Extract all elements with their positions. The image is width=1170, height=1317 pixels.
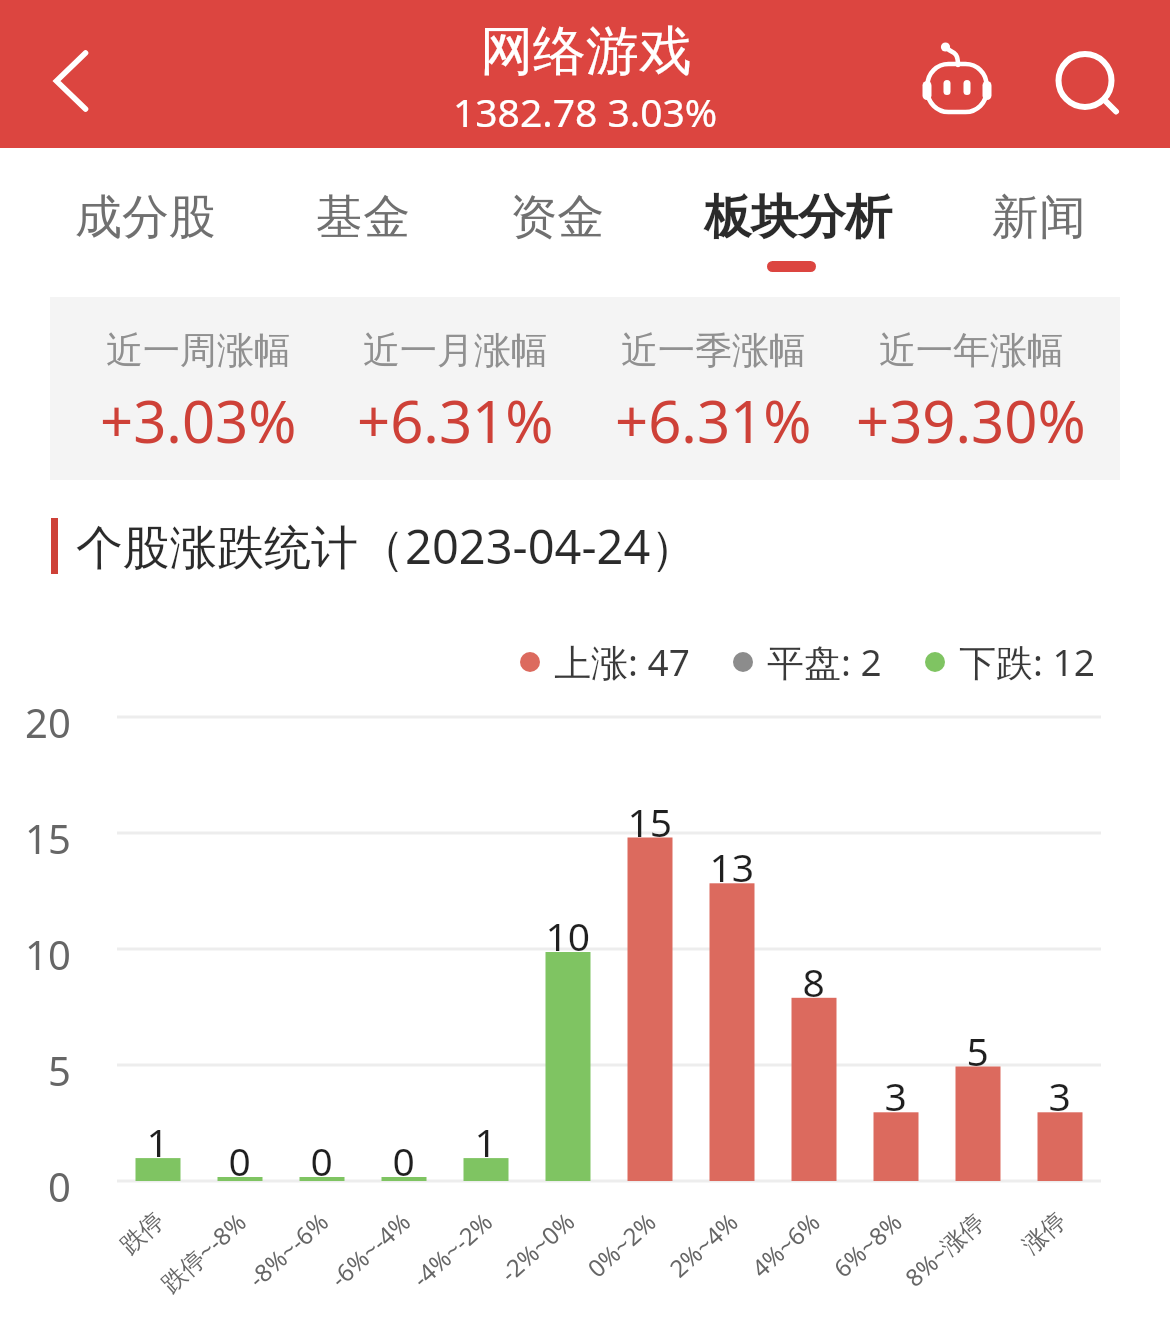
staticText: 上涨: 47 xyxy=(554,636,690,687)
staticText: 个股涨跌统计（2023-04-24） xyxy=(76,514,698,578)
button[interactable]: Back xyxy=(0,0,130,148)
staticText: 资金 xyxy=(510,188,604,247)
button[interactable]: 基金 xyxy=(316,148,410,272)
staticText: +6.31% xyxy=(615,381,812,460)
staticText: 近一周涨幅 xyxy=(106,327,291,374)
staticText: 板块分析 xyxy=(704,188,892,247)
button[interactable]: 成分股 xyxy=(75,148,216,272)
staticText: 1382.78 3.03% xyxy=(453,85,718,138)
staticText: 近一年涨幅 xyxy=(879,327,1064,374)
button[interactable]: 新闻 xyxy=(992,148,1086,272)
staticText: 近一季涨幅 xyxy=(621,327,806,374)
staticText: 下跌: 12 xyxy=(959,636,1095,687)
staticText: +39.30% xyxy=(856,381,1086,460)
staticText: 平盘: 2 xyxy=(767,636,882,687)
button[interactable]: AI assistant xyxy=(895,0,1025,148)
staticText: 成分股 xyxy=(75,188,216,247)
staticText: 网络游戏 xyxy=(480,18,692,85)
button[interactable]: 资金 xyxy=(510,148,604,272)
staticText: 基金 xyxy=(316,188,410,247)
staticText: 近一月涨幅 xyxy=(363,327,548,374)
button[interactable]: Search xyxy=(1025,0,1153,148)
button[interactable]: 板块分析 xyxy=(704,148,892,272)
staticText: +6.31% xyxy=(357,381,554,460)
staticText: +3.03% xyxy=(100,381,297,460)
staticText: 新闻 xyxy=(992,188,1086,247)
